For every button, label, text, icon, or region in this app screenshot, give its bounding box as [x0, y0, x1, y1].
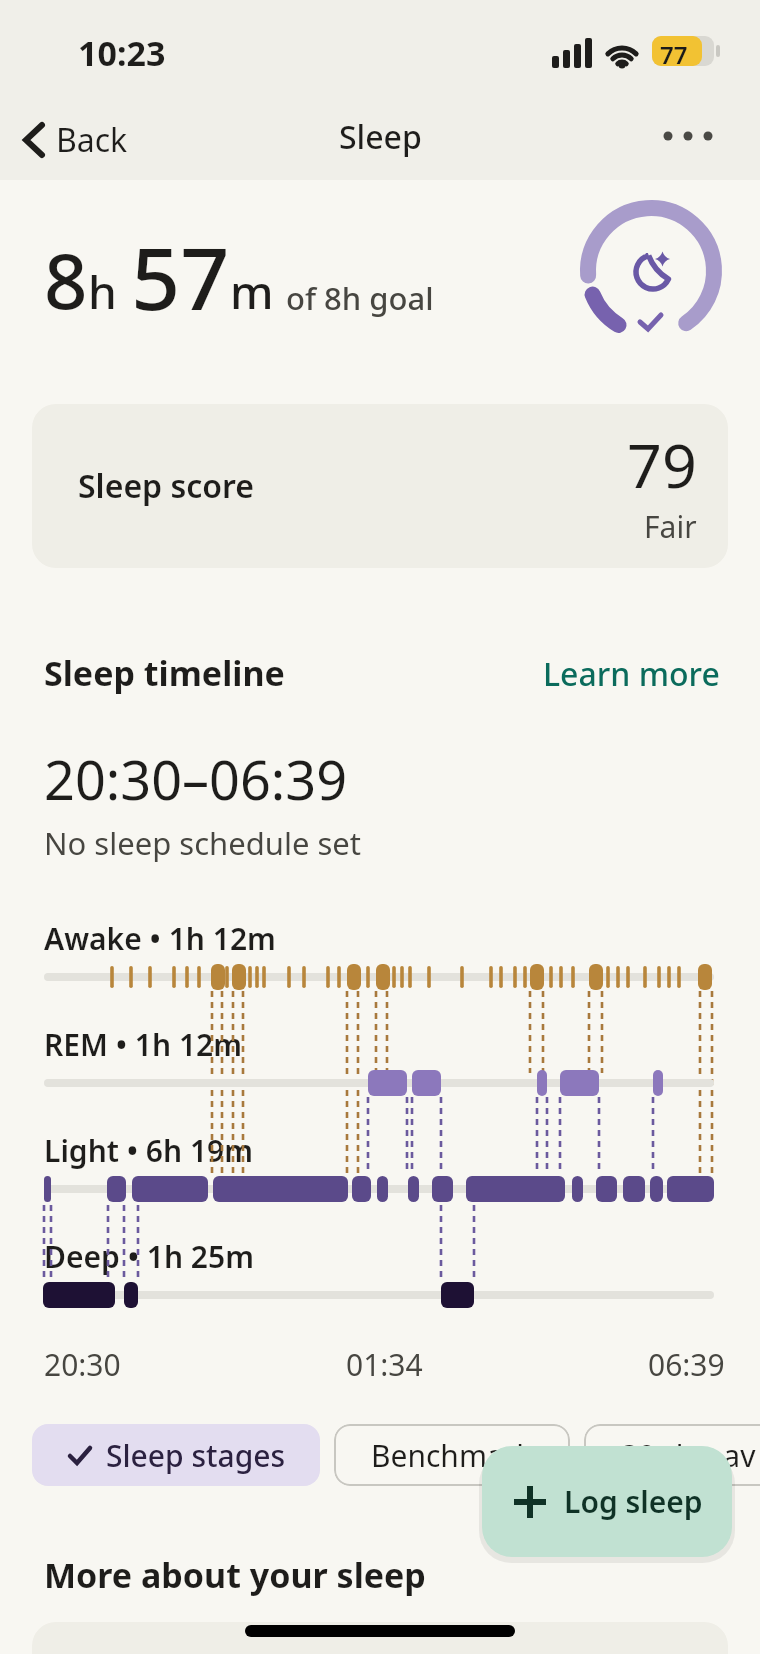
staticText: Log sleep [564, 1481, 703, 1522]
button[interactable]: Sleep score [32, 404, 728, 568]
staticText: More about your sleep [44, 1552, 426, 1598]
staticText: 8 [44, 228, 88, 332]
staticText: Fair [644, 506, 697, 547]
staticText: Deep • 1h 25m [44, 1236, 254, 1277]
staticText: Sleep score [78, 464, 255, 508]
staticText: No sleep schedule set [44, 822, 361, 864]
staticText: 06:39 [648, 1344, 725, 1385]
button[interactable]: 30-day av [584, 1424, 760, 1486]
staticText: h [88, 260, 117, 323]
staticText: 77 [660, 38, 688, 71]
staticText: Sleep [339, 115, 422, 159]
staticText: Benchmark [371, 1435, 533, 1476]
button[interactable]: Sleep stages [32, 1424, 320, 1486]
button[interactable]: Log sleep [482, 1446, 732, 1557]
staticText: 20:30 [44, 1344, 121, 1385]
button[interactable]: Back [10, 110, 136, 170]
staticText: Light • 6h 19m [44, 1130, 254, 1171]
staticText: 79 [627, 423, 697, 506]
staticText: 57 [131, 218, 230, 335]
staticText: REM • 1h 12m [44, 1024, 242, 1065]
button[interactable] [658, 110, 728, 160]
staticText: 30-day av [621, 1435, 756, 1476]
staticText: 01:34 [346, 1344, 423, 1385]
button[interactable]: Benchmark [334, 1424, 570, 1486]
button[interactable]: Learn more [543, 652, 720, 696]
staticText: 20:30–06:39 [44, 742, 348, 816]
staticText: Sleep stages [106, 1435, 286, 1476]
staticText: Sleep timeline [44, 650, 285, 696]
staticText: Back [56, 118, 128, 162]
staticText: m [230, 260, 274, 323]
staticText: 10:23 [78, 30, 166, 76]
staticText: Awake • 1h 12m [44, 918, 276, 959]
staticText: of 8h goal [286, 277, 434, 319]
